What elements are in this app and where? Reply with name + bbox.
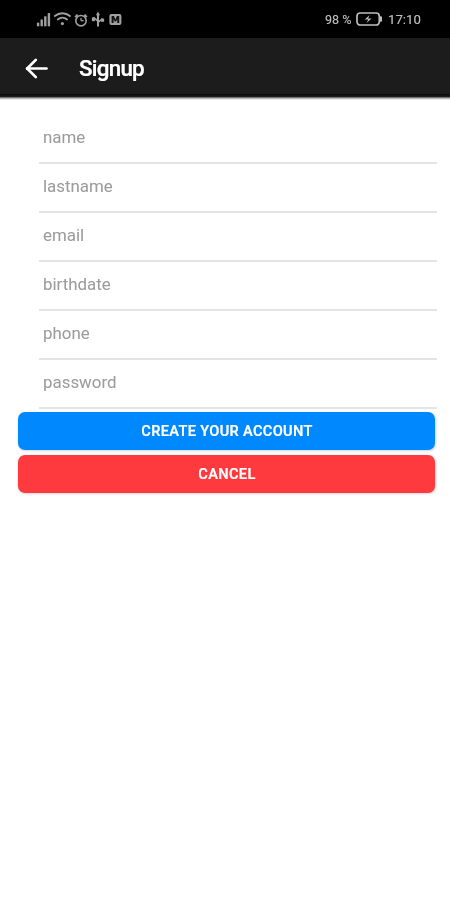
staticText: email bbox=[43, 225, 85, 245]
staticText: Signup bbox=[79, 55, 144, 81]
button[interactable]: CREATE YOUR ACCOUNT bbox=[18, 412, 435, 450]
staticText: name bbox=[43, 127, 86, 147]
staticText: 17:10 bbox=[388, 12, 421, 27]
staticText: lastname bbox=[43, 176, 113, 196]
staticText: password bbox=[43, 372, 117, 392]
staticText: birthdate bbox=[43, 274, 111, 294]
staticText: CANCEL bbox=[198, 465, 256, 482]
button[interactable]: Back bbox=[13, 45, 59, 91]
staticText: phone bbox=[43, 323, 90, 343]
button[interactable]: name bbox=[0, 115, 450, 164]
button[interactable]: password bbox=[0, 360, 450, 409]
button[interactable]: birthdate bbox=[0, 262, 450, 311]
button[interactable]: email bbox=[0, 213, 450, 262]
staticText: CREATE YOUR ACCOUNT bbox=[141, 422, 313, 439]
button[interactable]: lastname bbox=[0, 164, 450, 213]
button[interactable]: phone bbox=[0, 311, 450, 360]
staticText: 98 % bbox=[325, 12, 352, 27]
button[interactable]: CANCEL bbox=[18, 455, 435, 493]
